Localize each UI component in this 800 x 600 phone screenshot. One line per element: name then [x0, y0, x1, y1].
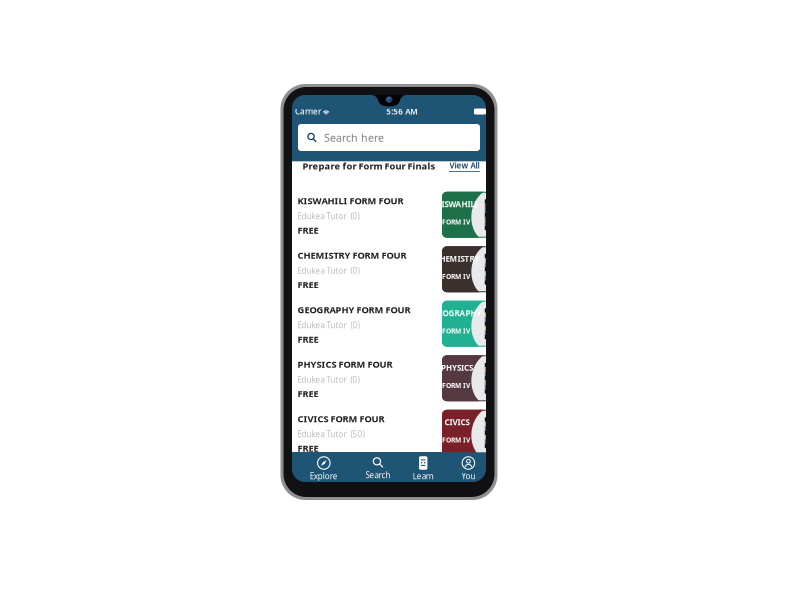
staticText: FORM IV	[442, 435, 470, 444]
staticText: Edukea Tutor (0)	[297, 320, 359, 330]
staticText: 5:56 AM	[386, 106, 417, 117]
button[interactable]: Learn	[401, 452, 446, 482]
staticText: FREE	[297, 224, 318, 236]
staticText: KISWAHILI FORM FOUR	[297, 194, 403, 207]
button[interactable]: Explore	[292, 452, 356, 482]
staticText: CIVICS FORM FOUR	[297, 412, 384, 425]
button[interactable]: GEOGRAPHY FORM FOUR	[292, 294, 486, 349]
staticText: Edukea Tutor (50)	[297, 429, 364, 439]
staticText: Edukea Tutor (0)	[297, 211, 359, 221]
staticText: Explore	[310, 471, 338, 481]
staticText: FORM IV	[442, 217, 470, 226]
staticText: FREE	[297, 278, 318, 291]
staticText: Edukea Tutor (0)	[297, 265, 359, 276]
button[interactable]: You	[446, 452, 486, 482]
button[interactable]: PHYSICS FORM FOUR	[292, 349, 486, 403]
staticText: CIVICS	[444, 417, 469, 427]
button[interactable]: Search	[356, 452, 401, 482]
staticText: KISWAHILI	[436, 199, 477, 209]
staticText: View All	[449, 160, 479, 171]
staticText: FORM IV	[442, 326, 470, 335]
button[interactable]: View All	[449, 157, 480, 174]
button[interactable]: Search here	[298, 124, 480, 151]
staticText: Carrier	[295, 106, 321, 117]
button[interactable]: CHEMISTRY FORM FOUR	[292, 240, 486, 294]
staticText: FORM IV	[442, 381, 470, 390]
staticText: PHYSICS FORM FOUR	[297, 358, 392, 370]
staticText: CHEMISTRY	[434, 253, 479, 264]
staticText: FORM IV	[442, 272, 470, 281]
staticText: FREE	[297, 442, 318, 454]
staticText: Learn	[413, 471, 434, 481]
staticText: Search here	[324, 130, 384, 145]
staticText: Edukea Tutor (0)	[297, 374, 359, 385]
button[interactable]: CIVICS FORM FOUR	[292, 403, 486, 458]
staticText: CHEMISTRY FORM FOUR	[297, 249, 406, 261]
staticText: FREE	[297, 333, 318, 345]
staticText: GEOGRAPHY FORM FOUR	[297, 303, 410, 316]
staticText: Search	[366, 470, 391, 480]
staticText: FREE	[297, 387, 318, 400]
staticText: You	[461, 471, 475, 481]
staticText: PHYSICS	[441, 362, 473, 373]
button[interactable]: KISWAHILI FORM FOUR	[292, 185, 486, 240]
staticText: Prepare for Form Four Finals	[302, 160, 435, 172]
staticText: GEOGRAPHY	[432, 308, 481, 318]
